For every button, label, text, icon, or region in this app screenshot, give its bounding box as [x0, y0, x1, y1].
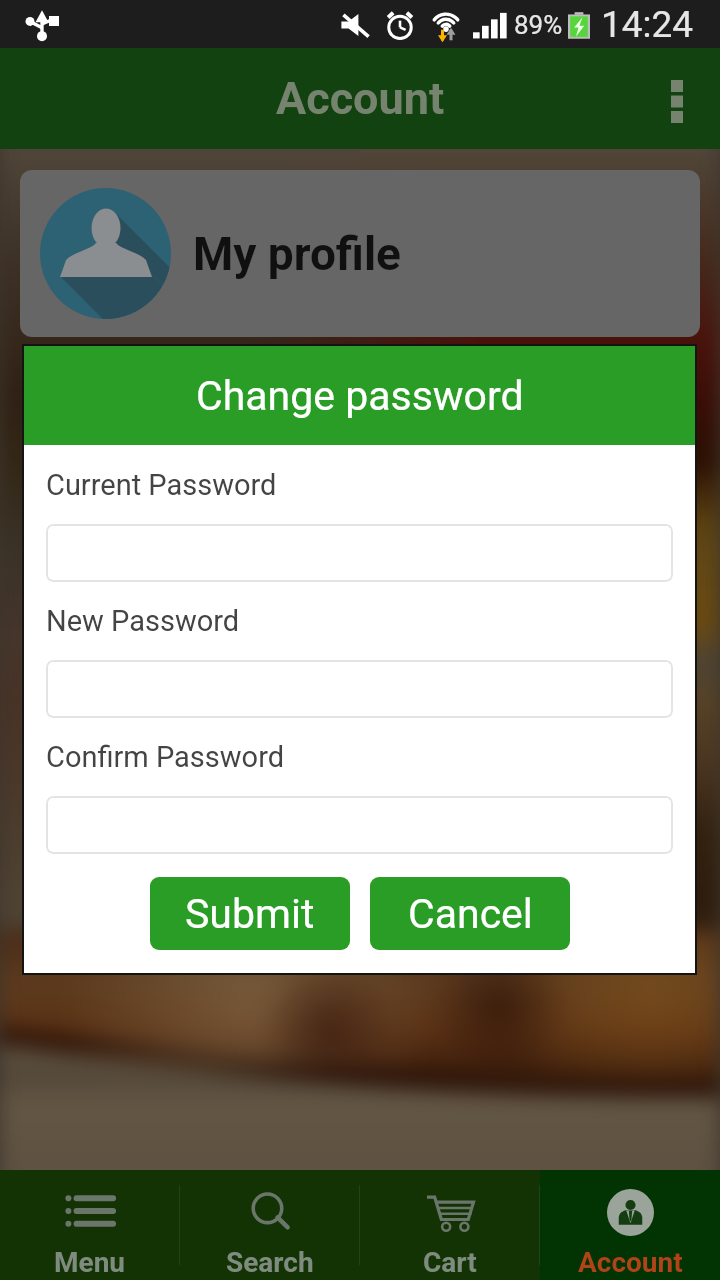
button[interactable]: Cancel: [370, 877, 570, 950]
button[interactable]: [46, 660, 673, 718]
button[interactable]: Account: [540, 1170, 720, 1280]
staticText: 89%: [514, 10, 563, 40]
staticText: Confirm Password: [46, 740, 285, 774]
button[interactable]: Search: [180, 1170, 360, 1280]
button[interactable]: More options: [658, 48, 720, 149]
staticText: 14:24: [601, 3, 694, 46]
staticText: Account: [578, 1246, 683, 1279]
staticText: Change password: [196, 372, 524, 420]
staticText: Menu: [54, 1246, 126, 1279]
staticText: Search: [226, 1246, 314, 1279]
button[interactable]: Submit: [150, 877, 350, 950]
staticText: New Password: [46, 604, 240, 638]
button[interactable]: [46, 524, 673, 582]
button[interactable]: Menu: [0, 1170, 180, 1280]
staticText: Current Password: [46, 468, 277, 502]
staticText: Cart: [423, 1246, 477, 1279]
staticText: My profile: [193, 227, 401, 281]
staticText: Submit: [185, 890, 315, 938]
button[interactable]: Cart: [360, 1170, 540, 1280]
button[interactable]: My profile: [20, 170, 700, 337]
staticText: Account: [276, 72, 445, 125]
button[interactable]: [46, 796, 673, 854]
staticText: Cancel: [408, 890, 533, 938]
